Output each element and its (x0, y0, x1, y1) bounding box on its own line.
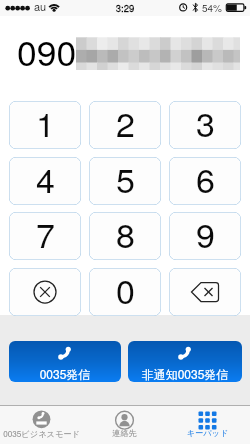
button[interactable]: 0035発信 (9, 341, 121, 382)
staticText: 0035発信 (9, 365, 121, 382)
staticText: 1 (36, 101, 55, 146)
button[interactable]: 9 (169, 212, 241, 260)
button[interactable]: 3 (169, 101, 241, 149)
staticText: 0035ビジネスモード (0, 428, 83, 440)
button[interactable]: 非通知0035発信 (128, 341, 242, 382)
staticText: 9 (196, 212, 215, 257)
button[interactable]: 7 (9, 212, 81, 260)
staticText: 8 (116, 212, 135, 257)
button[interactable]: 1 (9, 101, 81, 149)
staticText: 54% (202, 1, 223, 15)
staticText: 3 (196, 101, 215, 146)
staticText: 0 (116, 268, 135, 313)
button[interactable]: 8 (89, 212, 161, 260)
button[interactable]: 5 (89, 157, 161, 205)
button[interactable]: 0 (89, 268, 161, 316)
button[interactable]: Clear (9, 268, 81, 316)
staticText: 4 (36, 157, 55, 202)
button[interactable]: 連絡先 (83, 405, 166, 443)
staticText: 090 (17, 25, 77, 76)
staticText: 非通知0035発信 (128, 365, 242, 382)
staticText: 連絡先 (83, 428, 166, 438)
button[interactable]: 6 (169, 157, 241, 205)
button[interactable]: 0035ビジネスモード (0, 405, 83, 443)
button[interactable]: 4 (9, 157, 81, 205)
staticText: 6 (196, 157, 215, 202)
button[interactable]: キーパッド (166, 405, 249, 443)
staticText: 5 (116, 157, 135, 202)
staticText: 2 (116, 101, 135, 146)
button[interactable]: Delete (169, 268, 241, 316)
staticText: キーパッド (166, 428, 249, 438)
staticText: au (34, 0, 47, 14)
staticText: 7 (36, 212, 55, 257)
button[interactable]: 2 (89, 101, 161, 149)
staticText: 3:29 (0, 1, 250, 15)
